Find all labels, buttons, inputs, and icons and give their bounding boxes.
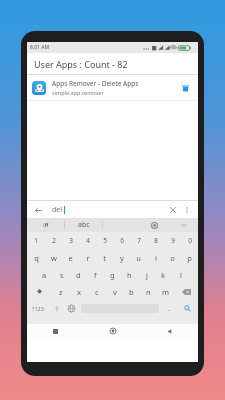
button[interactable]: w [45, 249, 62, 266]
staticText: n [146, 287, 151, 297]
staticText: o [170, 253, 175, 263]
button[interactable]: Recents [27, 324, 84, 338]
staticText: अ [43, 220, 49, 230]
staticText: 8 [154, 236, 158, 245]
staticText: u [136, 253, 141, 263]
button[interactable]: k [155, 266, 172, 283]
staticText: Apps Remover - Delete Apps [52, 79, 139, 88]
button[interactable]: t [96, 249, 113, 266]
button[interactable]: 7 [130, 232, 147, 249]
staticText: 0 [188, 236, 192, 245]
staticText: simple.app.remover [52, 89, 104, 96]
staticText: x [77, 287, 81, 297]
button[interactable]: ?123 [27, 300, 49, 317]
staticText: c [95, 287, 99, 297]
button[interactable]: v [106, 283, 123, 300]
button[interactable]: s [53, 266, 70, 283]
staticText: g [110, 270, 115, 280]
button[interactable]: 1 [27, 232, 45, 249]
button[interactable]: . [161, 300, 176, 317]
button[interactable]: d [70, 266, 87, 283]
staticText: a [42, 270, 47, 280]
button[interactable]: i [147, 249, 164, 266]
button[interactable]: h [121, 266, 138, 283]
button[interactable]: e [62, 249, 79, 266]
button[interactable]: 0 [181, 232, 198, 249]
staticText: v [113, 287, 117, 297]
staticText: t [103, 253, 106, 263]
button[interactable]: Change language [64, 300, 79, 317]
button[interactable]: x [70, 283, 88, 300]
staticText: l [180, 270, 182, 280]
button[interactable]: y [113, 249, 130, 266]
button[interactable]: o [164, 249, 181, 266]
button[interactable]: u [130, 249, 147, 266]
staticText: 4 [86, 236, 90, 245]
button[interactable]: Clear search [167, 204, 179, 216]
button[interactable]: 9 [164, 232, 181, 249]
button[interactable]: Delete app [177, 80, 193, 96]
staticText: ?123 [32, 305, 44, 312]
staticText: 6 [120, 236, 124, 245]
staticText: 1 [34, 236, 38, 245]
button[interactable]: Back [32, 204, 44, 216]
staticText: 2 [52, 236, 56, 245]
staticText: del [52, 205, 63, 215]
staticText: e [68, 253, 73, 263]
staticText: h [127, 270, 132, 280]
staticText: User Apps : Count - 82 [34, 58, 128, 70]
button[interactable]: अ [27, 218, 64, 232]
staticText: b [129, 287, 134, 297]
button[interactable]: f [87, 266, 104, 283]
staticText: 3 [69, 236, 73, 245]
button[interactable]: 5 [96, 232, 113, 249]
staticText: k [161, 270, 166, 280]
staticText: f [94, 270, 97, 280]
button[interactable]: Shift [27, 283, 52, 300]
button[interactable]: q [27, 249, 45, 266]
button[interactable]: l [172, 266, 189, 283]
button[interactable]: m [157, 283, 174, 300]
button[interactable]: Backspace [174, 283, 198, 300]
staticText: . [168, 304, 170, 314]
button[interactable]: Home [84, 324, 141, 338]
staticText: d [76, 270, 81, 280]
button[interactable]: 8 [147, 232, 164, 249]
staticText: j [146, 270, 148, 280]
staticText: abc [78, 220, 90, 230]
staticText: 8:01 AM [30, 44, 50, 51]
button[interactable]: 3 [62, 232, 79, 249]
button[interactable]: 2 [45, 232, 62, 249]
staticText: p [187, 253, 192, 263]
button[interactable]: abc [65, 218, 102, 232]
button[interactable]: Help [140, 218, 169, 232]
button[interactable]: More options [181, 204, 193, 216]
button[interactable]: Voice input [49, 300, 64, 317]
button[interactable]: j [138, 266, 155, 283]
button[interactable]: Hide keyboard [169, 218, 198, 232]
button[interactable]: a [36, 266, 53, 283]
staticText: m [162, 287, 170, 297]
button[interactable]: 6 [113, 232, 130, 249]
staticText: 9 [171, 236, 175, 245]
button[interactable]: c [88, 283, 106, 300]
button[interactable]: z [52, 283, 70, 300]
staticText: s [60, 270, 64, 280]
staticText: w [51, 253, 57, 263]
staticText: q [34, 253, 39, 263]
button[interactable]: Back [141, 324, 198, 338]
button[interactable]: g [104, 266, 121, 283]
staticText: i [155, 253, 157, 263]
button[interactable]: r [79, 249, 96, 266]
button[interactable]: Apps Remover - Delete Apps [27, 75, 198, 100]
staticText: y [120, 253, 124, 263]
button[interactable]: 4 [79, 232, 96, 249]
staticText: 5 [103, 236, 107, 245]
button[interactable]: b [123, 283, 140, 300]
button[interactable]: n [140, 283, 157, 300]
staticText: 7 [137, 236, 141, 245]
button[interactable]: Search [176, 300, 198, 317]
staticText: r [86, 253, 90, 263]
button[interactable]: p [181, 249, 198, 266]
